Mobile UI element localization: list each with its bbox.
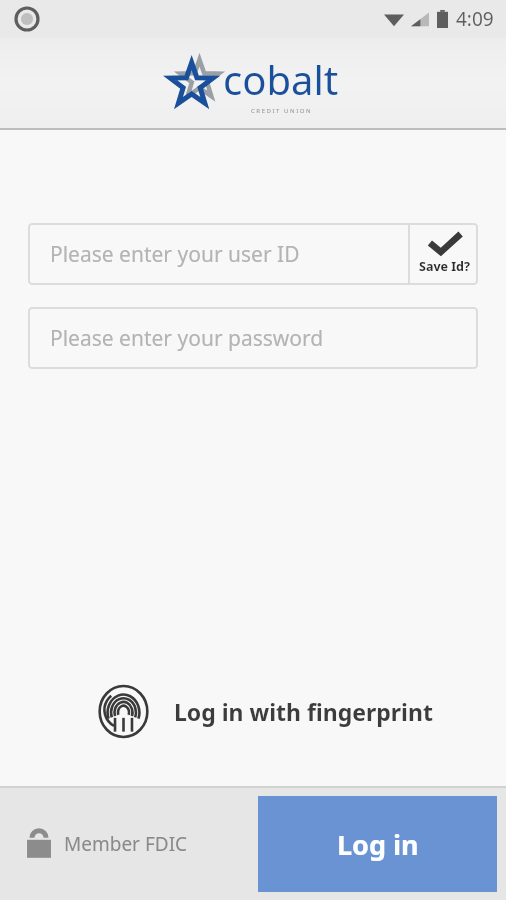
staticText: 4:09: [456, 6, 494, 32]
staticText: Log in: [337, 826, 419, 863]
button[interactable]: Log in: [258, 796, 497, 892]
button[interactable]: Save Id?: [410, 223, 478, 285]
button[interactable]: Member FDIC: [26, 829, 188, 859]
staticText: Log in with fingerprint: [174, 696, 433, 727]
button[interactable]: Please enter your user ID: [28, 223, 408, 285]
staticText: C R E D I T U N I O N: [251, 107, 311, 115]
staticText: Member FDIC: [64, 831, 188, 857]
staticText: Please enter your user ID: [50, 240, 300, 269]
button[interactable]: Log in with fingerprint: [0, 679, 506, 744]
staticText: Save Id?: [419, 258, 470, 275]
other: Log in with fingerprint: [97, 685, 150, 738]
staticText: Please enter your password: [50, 324, 324, 353]
button[interactable]: Please enter your password: [28, 307, 478, 369]
staticText: cobalt: [223, 52, 339, 106]
